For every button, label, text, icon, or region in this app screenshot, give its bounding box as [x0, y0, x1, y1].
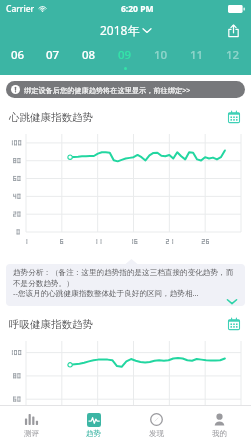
staticText: 2018年 — [100, 22, 140, 38]
button[interactable]: Pick date — [225, 315, 243, 333]
button[interactable]: 绑定设备后您的健康趋势将在这里显示，前往绑定>> — [6, 81, 245, 98]
staticText: 09 — [118, 47, 132, 63]
button[interactable]: Pick date — [225, 108, 243, 126]
staticText: 11 — [190, 47, 204, 63]
button[interactable]: 08 — [71, 42, 107, 75]
button[interactable]: 06 — [0, 42, 35, 75]
button[interactable]: 11 — [179, 42, 215, 75]
staticText: 发现 — [149, 429, 164, 438]
staticText: 呼吸健康指数趋势 — [9, 318, 93, 331]
button[interactable]: 07 — [35, 42, 71, 75]
staticText: 08 — [82, 47, 96, 63]
staticText: 心跳健康指数趋势 — [9, 111, 93, 124]
staticText: 06 — [11, 47, 25, 63]
staticText: 12 — [226, 47, 240, 63]
staticText: 测评 — [24, 429, 39, 438]
button[interactable]: 10 — [143, 42, 179, 75]
button[interactable]: 趋势分析：（备注：这里的趋势指的是这三档直接的变化趋势，而不是分数趋势。） — [6, 264, 245, 306]
staticText: 趋势分析：（备注：这里的趋势指的是这三档直接的变化趋势，而不是分数趋势。） — [13, 268, 238, 288]
staticText: 我的 — [212, 429, 227, 438]
button[interactable]: 测评 — [0, 406, 62, 446]
staticText: 6:20 PM — [121, 3, 154, 15]
button[interactable]: 12 — [215, 42, 251, 75]
button[interactable]: Share — [222, 19, 244, 41]
button[interactable]: 发现 — [125, 406, 188, 446]
staticText: 绑定设备后您的健康趋势将在这里显示，前往绑定>> — [24, 85, 191, 95]
staticText: 10 — [154, 47, 168, 63]
staticText: Carrier — [6, 3, 35, 15]
button[interactable]: 2018年 — [94, 20, 157, 40]
button[interactable]: 09 — [107, 42, 143, 75]
staticText: 趋势 — [86, 429, 101, 438]
staticText: --您该月的心跳健康指数整体处于良好的区间，趋势相... — [13, 288, 199, 298]
staticText: 07 — [46, 47, 60, 63]
button[interactable]: 趋势 — [62, 406, 125, 446]
button[interactable]: 我的 — [188, 406, 251, 446]
